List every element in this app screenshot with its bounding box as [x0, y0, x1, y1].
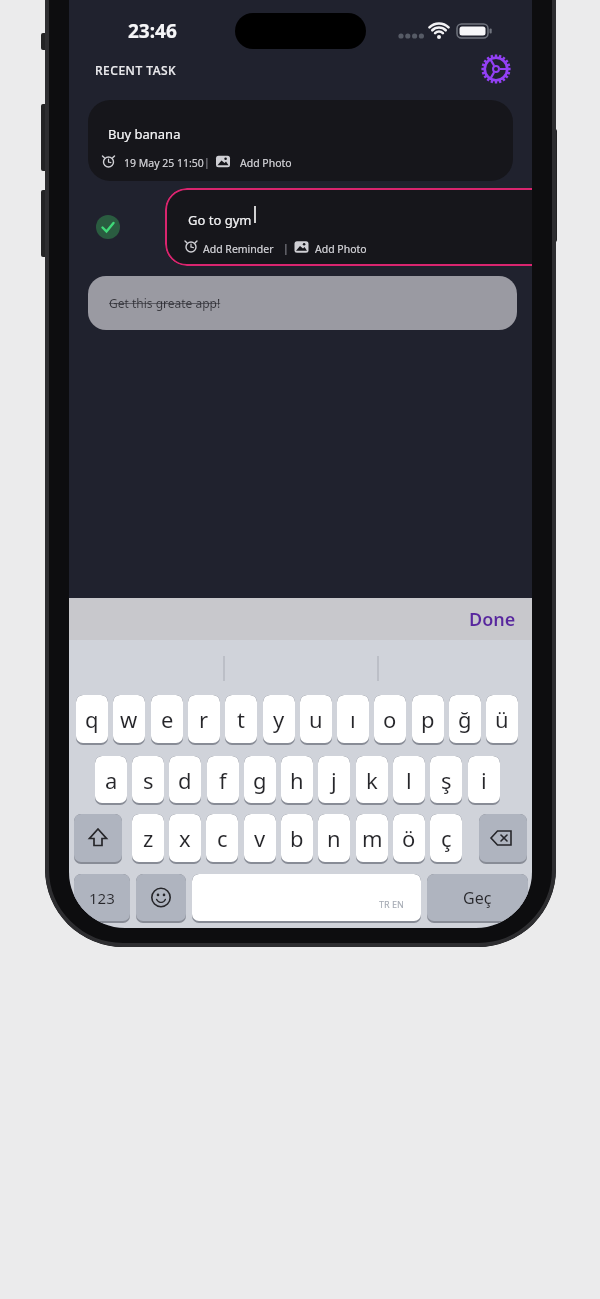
button[interactable]: ı [337, 695, 369, 745]
staticText: RECENT TASK [95, 62, 177, 78]
button[interactable] [165, 188, 532, 266]
button[interactable]: k [356, 756, 388, 805]
button[interactable]: e [151, 695, 183, 745]
staticText: Done [469, 607, 516, 632]
button[interactable]: l [393, 756, 425, 805]
button[interactable]: u [300, 695, 332, 745]
button[interactable]: f [207, 756, 239, 805]
staticText: Add Photo [240, 156, 292, 170]
button[interactable]: g [244, 756, 276, 805]
button[interactable]: ü [486, 695, 518, 745]
staticText: z [143, 823, 154, 853]
staticText: l [406, 765, 412, 795]
staticText: Add Reminder [203, 242, 274, 256]
button[interactable]: ğ [449, 695, 481, 745]
button[interactable]: r [188, 695, 220, 745]
staticText: m [362, 823, 383, 853]
button[interactable]: t [225, 695, 257, 745]
staticText: 123 [89, 888, 115, 908]
staticText: Get this greate app! [109, 295, 221, 311]
button[interactable]: b [281, 814, 313, 864]
staticText: 19 May 25 11:50 [124, 156, 204, 170]
staticText: | [204, 155, 210, 169]
button[interactable] [479, 814, 527, 864]
staticText: ş [441, 765, 452, 795]
staticText: TR EN [379, 898, 404, 910]
button[interactable] [74, 814, 122, 864]
staticText: y [273, 704, 285, 734]
button[interactable]: x [169, 814, 201, 864]
button[interactable]: z [132, 814, 164, 864]
button[interactable] [192, 874, 421, 923]
button[interactable]: 123 [74, 874, 130, 923]
button[interactable]: Done [457, 598, 527, 640]
button[interactable]: h [281, 756, 313, 805]
staticText: b [290, 823, 304, 853]
staticText: ğ [458, 704, 472, 734]
button[interactable] [477, 50, 515, 88]
staticText: ç [441, 823, 452, 853]
button[interactable]: v [244, 814, 276, 864]
button[interactable]: s [132, 756, 164, 805]
button[interactable]: Geç [427, 874, 528, 923]
staticText: ü [495, 704, 509, 734]
button[interactable]: y [263, 695, 295, 745]
staticText: Buy banana [108, 125, 181, 143]
staticText: f [219, 765, 227, 795]
staticText: c [217, 823, 228, 853]
staticText: 23:46 [128, 18, 177, 44]
staticText: ö [402, 823, 416, 853]
button[interactable]: w [113, 695, 145, 745]
button[interactable]: ö [393, 814, 425, 864]
staticText: i [481, 765, 487, 795]
staticText: | [283, 241, 289, 255]
button[interactable]: i [468, 756, 500, 805]
button[interactable]: d [169, 756, 201, 805]
button[interactable]: q [76, 695, 108, 745]
staticText: x [179, 823, 191, 853]
button[interactable]: o [374, 695, 406, 745]
staticText: n [327, 823, 341, 853]
button[interactable] [96, 215, 120, 239]
staticText: o [383, 704, 397, 734]
staticText: k [366, 765, 378, 795]
button[interactable]: ç [430, 814, 462, 864]
button[interactable]: ş [430, 756, 462, 805]
staticText: r [199, 704, 209, 734]
staticText: Go to gym [188, 211, 252, 229]
staticText: a [105, 765, 118, 795]
staticText: t [237, 704, 245, 734]
button[interactable]: m [356, 814, 388, 864]
staticText: e [161, 704, 174, 734]
button[interactable] [88, 276, 517, 330]
staticText: ı [350, 704, 356, 734]
staticText: j [331, 765, 337, 795]
staticText: u [309, 704, 323, 734]
button[interactable]: a [95, 756, 127, 805]
button[interactable]: c [206, 814, 238, 864]
button[interactable]: j [318, 756, 350, 805]
staticText: h [290, 765, 304, 795]
staticText: p [421, 704, 435, 734]
staticText: Add Photo [315, 242, 367, 256]
staticText: Geç [463, 887, 492, 909]
button[interactable]: p [412, 695, 444, 745]
staticText: d [178, 765, 192, 795]
staticText: s [143, 765, 154, 795]
staticText: g [253, 765, 267, 795]
staticText: q [85, 704, 99, 734]
staticText: v [254, 823, 266, 853]
button[interactable] [136, 874, 186, 923]
staticText: w [120, 704, 138, 734]
button[interactable] [88, 100, 513, 181]
button[interactable]: n [318, 814, 350, 864]
